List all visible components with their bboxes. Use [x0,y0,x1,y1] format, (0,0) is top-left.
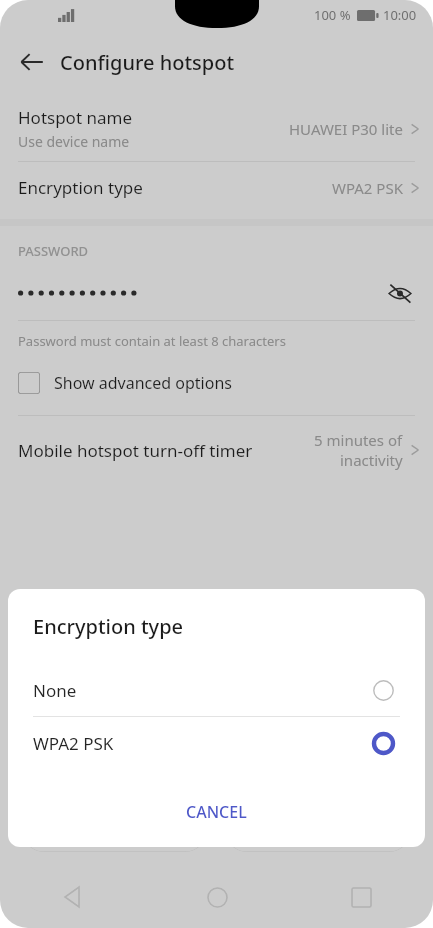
button[interactable] [225,808,411,852]
button[interactable]: Recents [289,866,433,928]
staticText: Mobile hotspot turn-off timer [18,439,314,462]
staticText: Use device name [18,132,130,151]
button[interactable]: None [8,664,425,716]
button[interactable]: Encryption type [0,162,433,213]
button[interactable]: Show password [383,276,417,310]
staticText: Encryption type [33,613,184,640]
button[interactable]: CANCEL [168,795,265,829]
staticText: PASSWORD [18,242,89,260]
button[interactable] [22,808,207,852]
staticText: 100 % [314,6,351,24]
staticText: Configure hotspot [60,49,235,76]
staticText: 10:00 [383,6,417,24]
staticText: Password must contain at least 8 charact… [18,332,286,350]
button[interactable]: Back [10,40,54,84]
button[interactable]: WPA2 PSK [8,717,425,769]
button[interactable]: Hotspot name [0,98,433,161]
button[interactable]: Mobile hotspot turn-off timer [0,416,433,484]
button[interactable]: Show advanced options [0,368,433,398]
button[interactable]: Selected [366,726,400,760]
staticText: HUAWEI P30 lite [289,119,403,139]
button[interactable]: Back [0,866,145,928]
staticText: Show advanced options [54,372,232,394]
staticText: CANCEL [186,801,247,823]
staticText: None [33,679,366,702]
staticText: WPA2 PSK [33,732,366,755]
staticText: 5 minutes of [314,430,403,450]
staticText: Encryption type [18,176,332,199]
button[interactable]: Not selected [366,673,400,707]
staticText: WPA2 PSK [332,178,403,198]
staticText: Hotspot name [18,106,132,129]
staticText: inactivity [340,450,403,470]
